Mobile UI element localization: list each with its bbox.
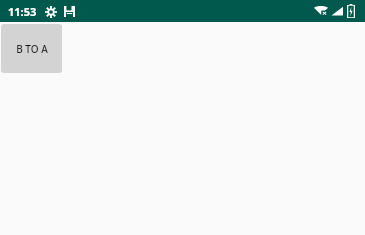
staticText: 11:53: [8, 4, 37, 19]
other: Settings: [45, 6, 57, 18]
other: Mobile signal: [331, 5, 343, 17]
other: Wi-Fi disconnected: [314, 5, 328, 17]
other: Save: [64, 6, 75, 17]
other: Battery charging: [347, 4, 355, 18]
staticText: B TO A: [16, 42, 48, 56]
button[interactable]: B TO A: [1, 24, 62, 73]
